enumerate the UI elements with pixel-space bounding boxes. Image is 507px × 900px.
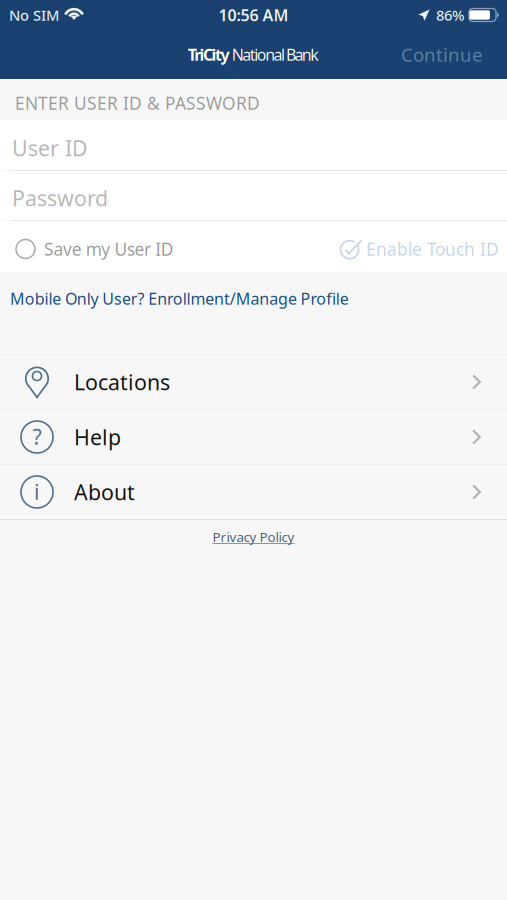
staticText: Save my User ID (44, 237, 174, 260)
staticText: ENTER USER ID & PASSWORD (15, 91, 260, 114)
button[interactable]: ? (0, 410, 507, 464)
staticText: Enable Touch ID (366, 237, 499, 260)
staticText: Help (74, 423, 121, 451)
staticText: No SIM (9, 5, 59, 25)
staticText: Privacy Policy (212, 528, 294, 546)
staticText: User ID (12, 134, 88, 162)
button[interactable]: Enable Touch ID (340, 237, 499, 260)
staticText: 86% (436, 5, 464, 25)
staticText: National Bank (229, 44, 319, 65)
button[interactable]: Privacy Policy (204, 524, 302, 550)
staticText: ? (32, 422, 41, 451)
button[interactable]: Continue (389, 32, 507, 76)
staticText: i (34, 477, 40, 506)
button[interactable]: Save my User ID (16, 237, 174, 260)
staticText: About (74, 478, 135, 506)
button[interactable]: Mobile Only User? Enrollment/Manage Prof… (10, 288, 349, 309)
button[interactable]: Locations (0, 355, 507, 409)
staticText: TriCity (188, 44, 229, 65)
staticText: Password (12, 184, 108, 212)
staticText: Continue (401, 42, 483, 67)
staticText: Mobile Only User? Enrollment/Manage Prof… (10, 288, 349, 309)
staticText: 10:56 AM (218, 4, 288, 26)
button[interactable]: i (0, 465, 507, 519)
staticText: Locations (74, 368, 170, 396)
